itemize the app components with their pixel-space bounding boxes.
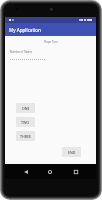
staticText: Number of Tokens: [10, 50, 33, 53]
button[interactable]: END: [62, 147, 81, 157]
button[interactable]: Back: [13, 164, 36, 179]
button[interactable]: THREE: [16, 131, 35, 141]
button[interactable]: TWO: [16, 117, 35, 127]
button[interactable]: ONE: [16, 103, 35, 113]
staticText: THREE: [20, 134, 31, 139]
staticText: END: [68, 150, 76, 155]
staticText: TWO: [21, 120, 30, 125]
button[interactable]: Recent apps: [64, 164, 87, 179]
staticText: ONE: [22, 106, 30, 111]
staticText: Player Turn: [44, 40, 58, 43]
staticText: My Application: [9, 27, 41, 33]
button[interactable]: Home: [38, 164, 61, 179]
